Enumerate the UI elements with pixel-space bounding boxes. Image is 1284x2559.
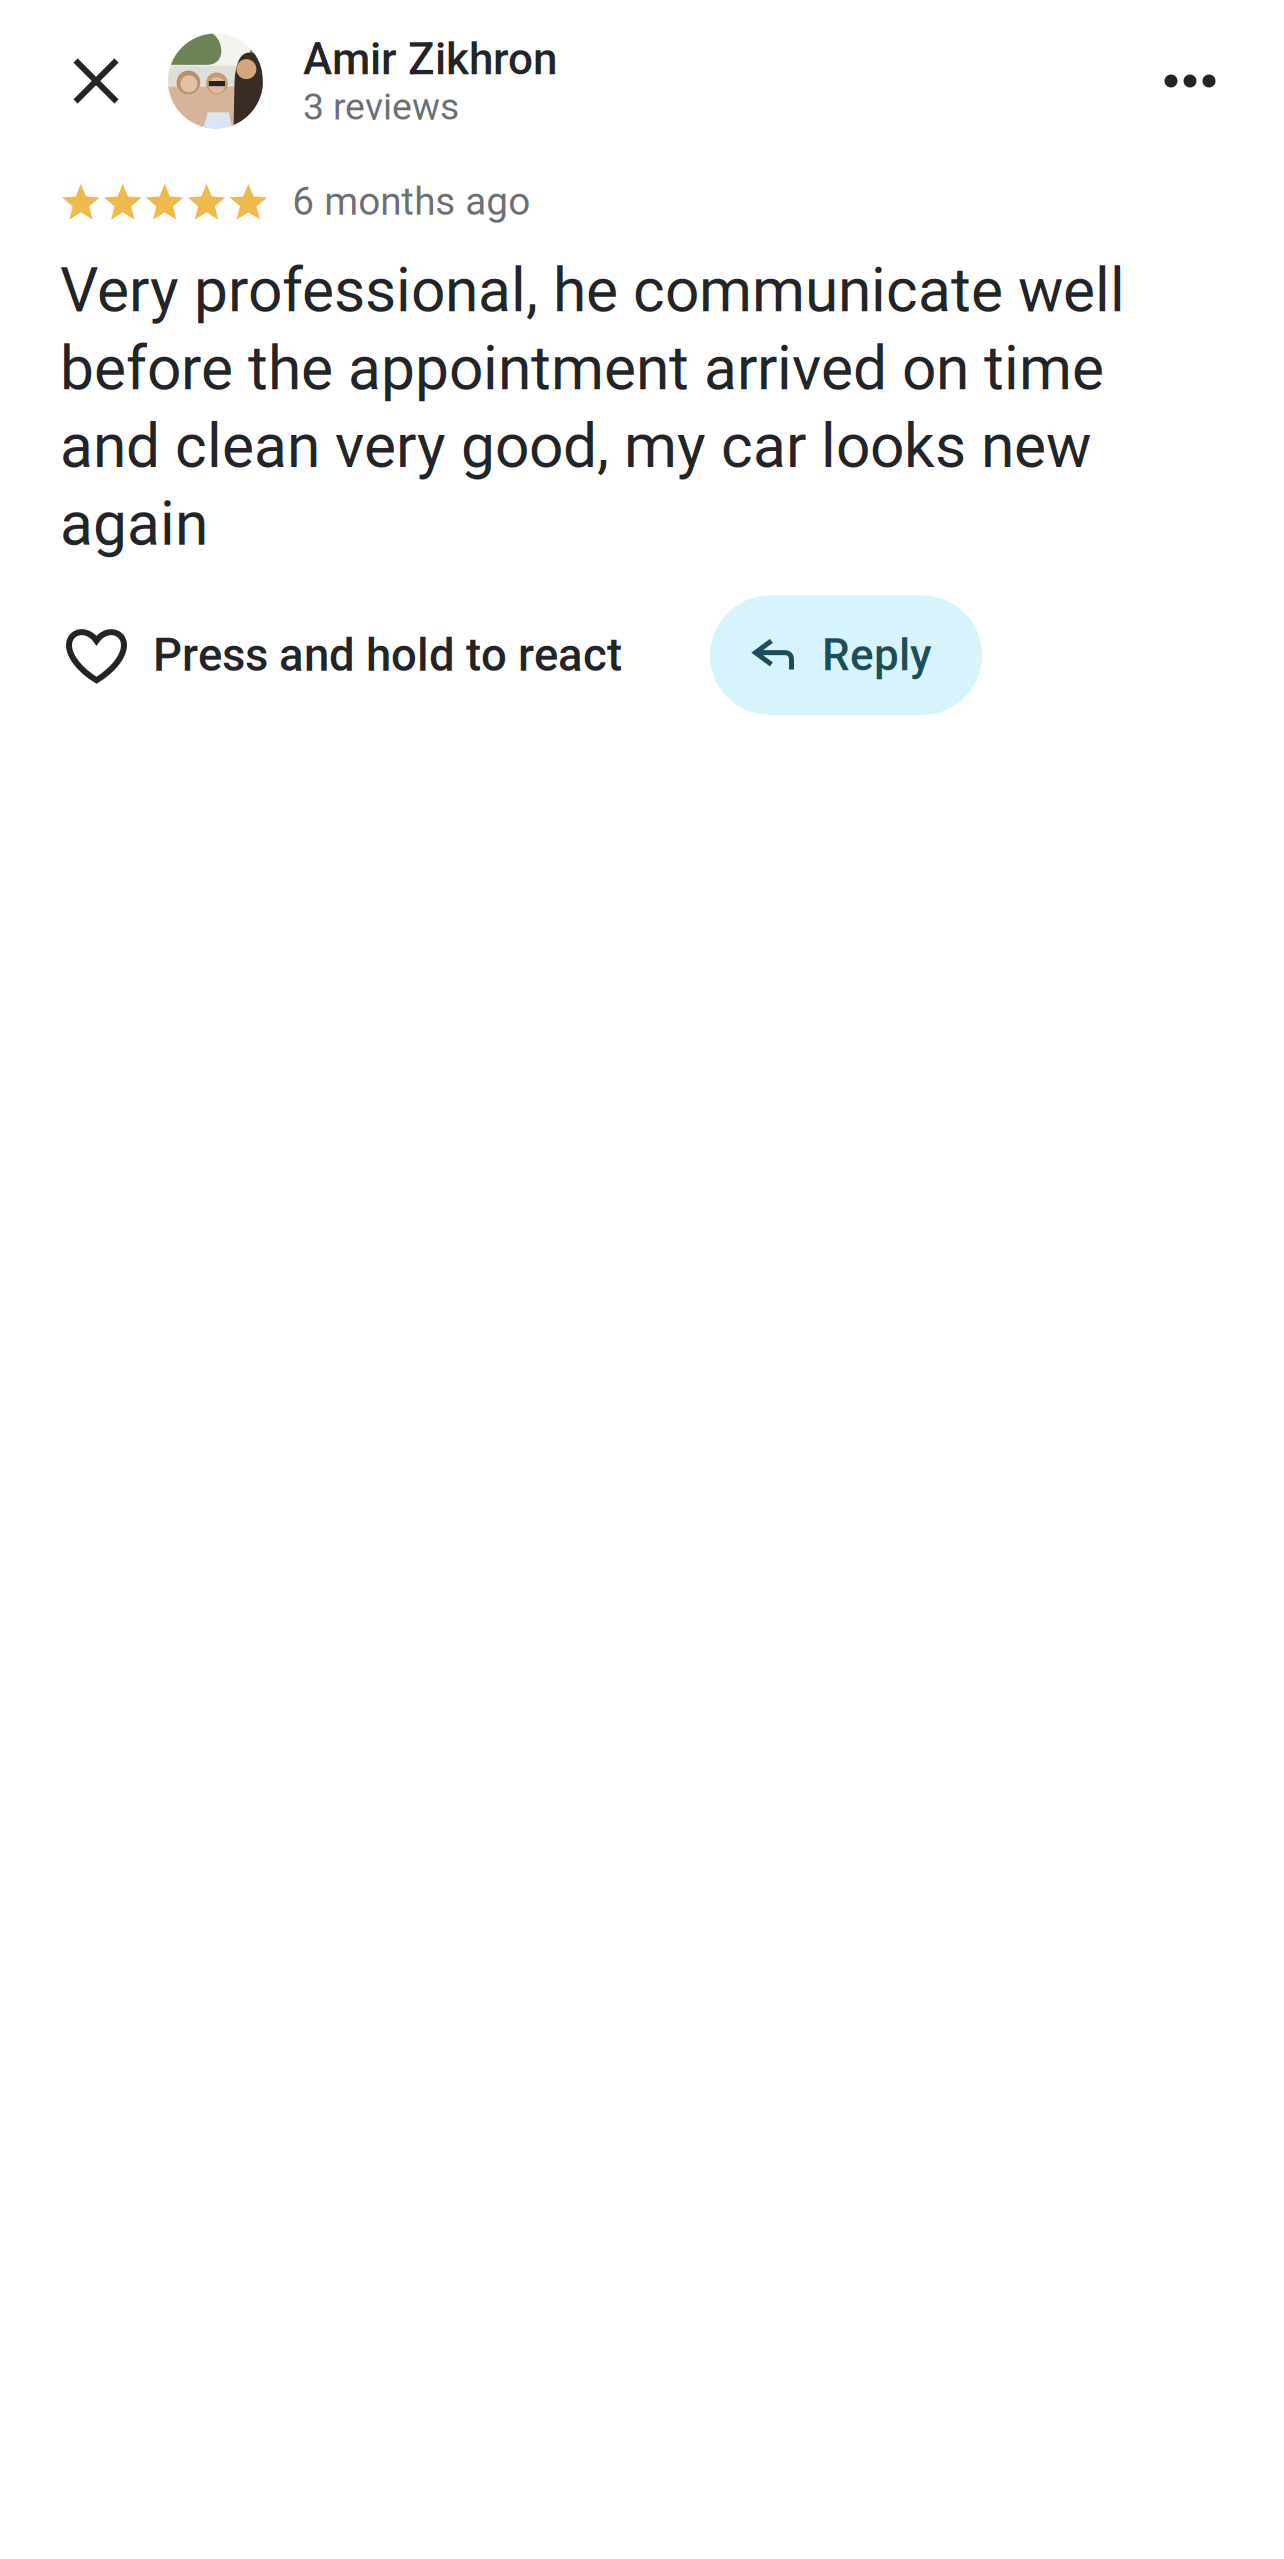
staticText: 6 months ago [292,179,530,224]
button[interactable]: More options [1130,33,1250,129]
staticText: Press and hold to react [153,629,622,682]
staticText: Very professional, he communicate well b… [60,255,1125,559]
button[interactable]: Reply [710,595,982,715]
staticText: Reply [822,629,932,681]
staticText: Amir Zikhron [303,33,557,85]
button[interactable]: Close [48,33,144,129]
staticText: 3 reviews [303,85,459,129]
button[interactable]: Press and hold to react [66,609,622,701]
